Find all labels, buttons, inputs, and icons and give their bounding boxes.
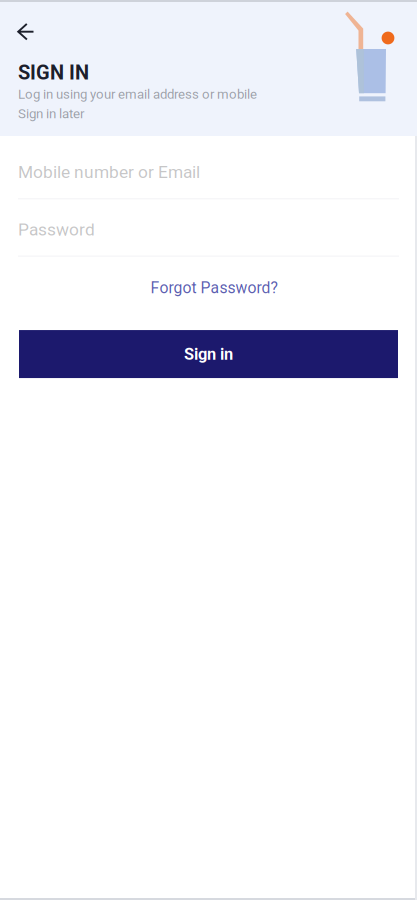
staticText: Sign in later [18, 106, 85, 121]
staticText: SIGN IN [18, 61, 89, 84]
button[interactable]: Sign in [0, 330, 417, 378]
button[interactable]: Sign in later [0, 102, 99, 125]
staticText: Forgot Password? [150, 279, 277, 297]
button[interactable]: Back [0, 0, 50, 61]
button[interactable]: Forgot Password? [0, 257, 417, 330]
staticText: Password [18, 219, 95, 240]
staticText: Sign in [184, 344, 233, 364]
staticText: Log in using your email address or mobil… [18, 86, 257, 102]
staticText: Mobile number or Email [18, 162, 200, 182]
